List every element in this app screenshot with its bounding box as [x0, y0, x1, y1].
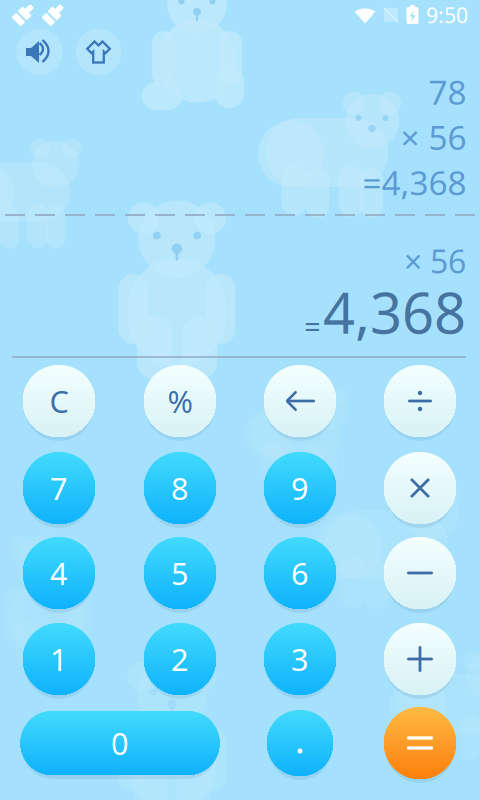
button[interactable]: 1	[23, 623, 95, 695]
button[interactable]: 0	[20, 711, 219, 775]
staticText: =4,368	[362, 160, 466, 204]
staticText: 9:50	[426, 1, 468, 29]
staticText: 4	[50, 553, 68, 593]
button[interactable]: C	[23, 365, 95, 437]
staticText: 8	[171, 468, 189, 508]
staticText: 2	[171, 639, 189, 679]
button[interactable]: Equals	[384, 707, 456, 779]
staticText: × 56	[400, 115, 466, 159]
button[interactable]: Multiply	[384, 452, 456, 524]
staticText: C	[49, 381, 68, 421]
staticText: %	[167, 381, 192, 421]
staticText: × 56	[404, 240, 466, 282]
button[interactable]: 4	[23, 537, 95, 609]
button[interactable]: Backspace	[264, 365, 336, 437]
staticText: 1	[50, 639, 68, 679]
button[interactable]: 5	[144, 537, 216, 609]
button[interactable]: 7	[23, 452, 95, 524]
staticText: 5	[171, 553, 189, 593]
button[interactable]: Minus	[384, 537, 456, 609]
staticText: =	[304, 306, 321, 345]
staticText: 9	[291, 468, 309, 508]
button[interactable]: Sound	[16, 29, 62, 75]
staticText: 78	[428, 70, 466, 114]
button[interactable]: 8	[144, 452, 216, 524]
button[interactable]: Plus	[384, 623, 456, 695]
button[interactable]: 3	[264, 623, 336, 695]
button[interactable]: 2	[144, 623, 216, 695]
button[interactable]: Decimal point	[263, 710, 337, 776]
staticText: 4,368	[323, 275, 466, 349]
button[interactable]: 9	[264, 452, 336, 524]
staticText: 3	[291, 639, 309, 679]
button[interactable]: Divide	[384, 365, 456, 437]
button[interactable]: Theme	[75, 29, 121, 75]
staticText: 0	[111, 723, 129, 763]
staticText: 6	[291, 553, 309, 593]
staticText: 7	[50, 468, 68, 508]
button[interactable]: 6	[264, 537, 336, 609]
button[interactable]: %	[144, 365, 216, 437]
